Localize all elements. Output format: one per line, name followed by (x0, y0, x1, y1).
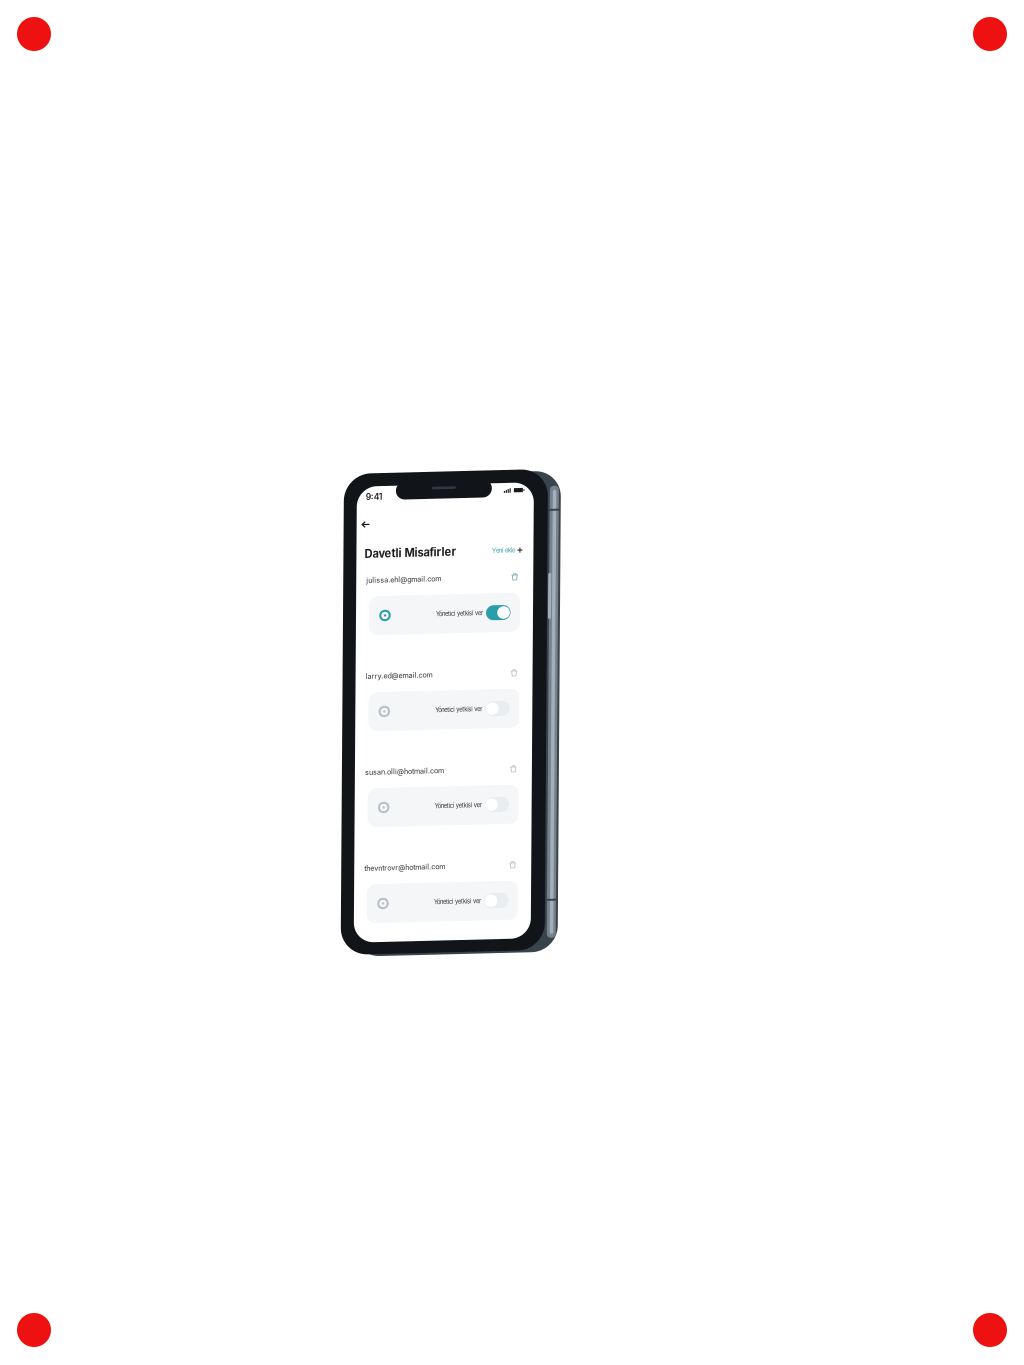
button[interactable]: Yönetici yetkisi ver (357, 597, 534, 636)
button[interactable]: thevntrovr@hotmail.com (357, 862, 534, 876)
staticText: susan.olli@hotmail.com (367, 769, 446, 777)
staticText: 9:41 (366, 492, 383, 503)
button[interactable]: julissa.ehl@gmail.com (357, 574, 534, 588)
button[interactable]: Yönetici yetkisi ver (357, 693, 534, 732)
button[interactable]: susan.olli@hotmail.com (357, 766, 534, 780)
staticText: Yönetici yetkisi ver (437, 613, 484, 620)
staticText: Yeni ekle (492, 551, 515, 558)
button[interactable]: Yönetici yetkisi ver (357, 885, 534, 924)
button[interactable]: Yeni ekle (492, 547, 523, 562)
button[interactable]: Yönetici yetkisi ver (357, 789, 534, 828)
staticText: Yönetici yetkisi ver (437, 805, 484, 812)
button[interactable]: Geri (357, 508, 391, 537)
staticText: larry.ed@email.com (367, 673, 434, 681)
staticText: julissa.ehl@gmail.com (367, 577, 442, 585)
staticText: thevntrovr@hotmail.com (367, 865, 448, 873)
staticText: Davetli Misafirler (365, 548, 457, 561)
staticText: Yönetici yetkisi ver (437, 901, 484, 908)
staticText: Yönetici yetkisi ver (437, 709, 484, 716)
button[interactable]: larry.ed@email.com (357, 670, 534, 684)
